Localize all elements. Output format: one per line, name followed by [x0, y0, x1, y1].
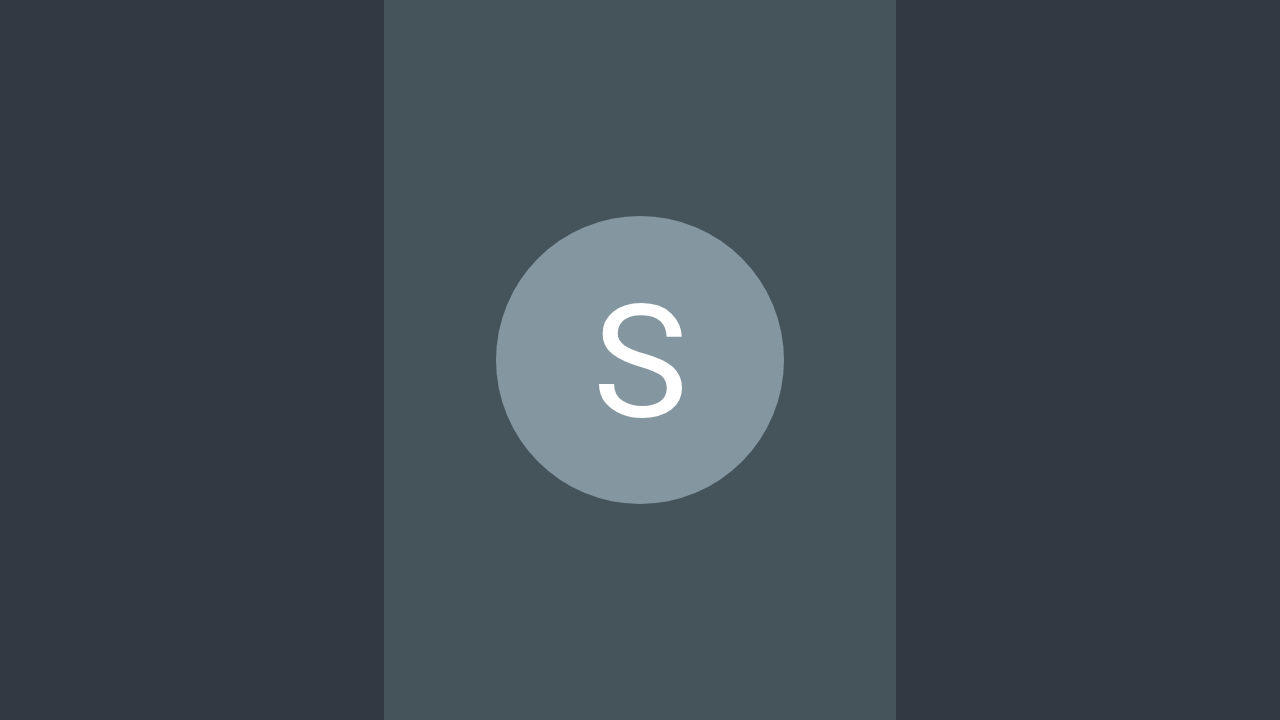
button[interactable]: Account avatar, S: [496, 216, 784, 504]
